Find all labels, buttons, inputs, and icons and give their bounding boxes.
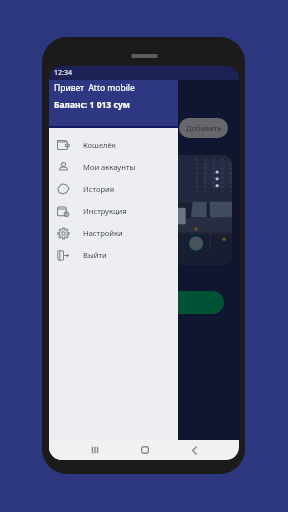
button[interactable]: Home — [134, 440, 156, 460]
button[interactable]: История — [49, 178, 178, 200]
staticText: Мои аккаунты — [83, 162, 136, 172]
button[interactable]: Настройки — [49, 222, 178, 244]
button[interactable]: Выйти — [49, 244, 178, 266]
button[interactable] — [57, 291, 224, 314]
button[interactable]: Recent apps — [84, 440, 106, 460]
staticText: Кошелёк — [83, 140, 116, 150]
button[interactable]: Мои аккаунты — [49, 156, 178, 178]
button[interactable]: Back — [183, 440, 205, 460]
staticText: История — [83, 184, 115, 194]
button[interactable]: Добавить — [179, 118, 228, 138]
staticText: Выйти — [83, 250, 107, 260]
staticText: Добавить — [186, 123, 222, 133]
staticText: Привет Atto mobile — [54, 82, 135, 94]
staticText: Настройки — [83, 228, 123, 238]
staticText: Инструкция — [83, 206, 127, 216]
staticText: 12:34 — [54, 68, 72, 78]
staticText: Баланс: 1 013 сум — [54, 99, 130, 111]
button[interactable]: Инструкция — [49, 200, 178, 222]
button[interactable]: Кошелёк — [49, 134, 178, 156]
